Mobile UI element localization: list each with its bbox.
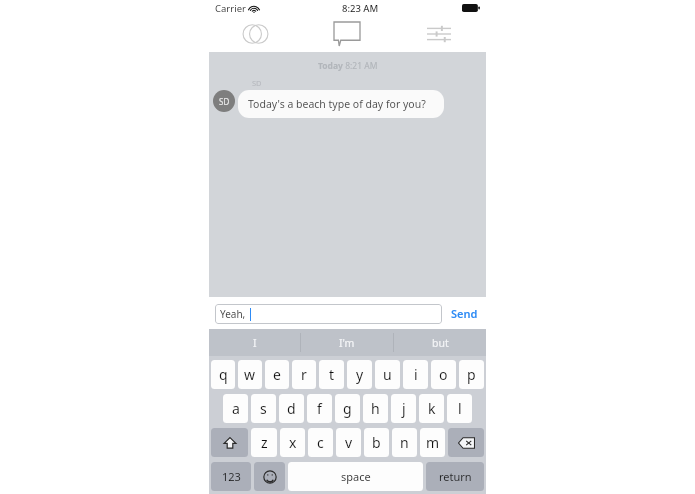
staticText: w xyxy=(244,365,256,384)
staticText: f xyxy=(317,399,322,418)
button[interactable]: Contacts xyxy=(209,16,301,52)
staticText: Today 8:21 AM xyxy=(318,60,378,72)
button[interactable]: w xyxy=(238,360,262,389)
button[interactable]: u xyxy=(375,360,400,389)
button[interactable]: b xyxy=(364,428,389,457)
staticText: o xyxy=(439,365,448,384)
staticText: c xyxy=(317,433,324,452)
staticText: Carrier xyxy=(215,2,246,15)
staticText: Today's a beach type of day for you? xyxy=(248,97,426,111)
button[interactable]: Today's a beach type of day for you? xyxy=(238,90,444,118)
button[interactable]: n xyxy=(392,428,417,457)
staticText: Send xyxy=(451,306,478,321)
button[interactable]: I'm xyxy=(301,329,393,356)
staticText: 8:23 AM xyxy=(342,2,379,15)
staticText: x xyxy=(289,433,297,452)
staticText: m xyxy=(426,433,440,452)
staticText: I'm xyxy=(339,336,355,350)
button[interactable]: r xyxy=(292,360,316,389)
staticText: d xyxy=(287,399,296,418)
staticText: q xyxy=(219,365,228,384)
staticText: k xyxy=(428,399,436,418)
button[interactable]: Backspace xyxy=(448,428,484,457)
button[interactable]: a xyxy=(223,394,248,423)
button[interactable]: I xyxy=(209,329,300,356)
staticText: e xyxy=(273,365,281,384)
staticText: b xyxy=(372,433,381,452)
staticText: z xyxy=(261,433,268,452)
button[interactable]: o xyxy=(431,360,456,389)
button[interactable]: Messages xyxy=(301,16,393,52)
button[interactable]: space xyxy=(288,462,423,491)
staticText: l xyxy=(458,399,462,418)
staticText: return xyxy=(439,469,472,484)
staticText: j xyxy=(402,399,406,418)
staticText: p xyxy=(467,365,476,384)
button[interactable]: m xyxy=(420,428,445,457)
button[interactable]: Send xyxy=(449,302,480,325)
staticText: but xyxy=(432,336,449,350)
button[interactable]: g xyxy=(335,394,360,423)
staticText: space xyxy=(341,469,371,484)
staticText: v xyxy=(345,433,353,452)
staticText: I xyxy=(253,336,257,350)
staticText: a xyxy=(232,399,240,418)
button[interactable]: c xyxy=(308,428,333,457)
button[interactable]: s xyxy=(251,394,276,423)
button[interactable]: 123 xyxy=(211,462,251,491)
button[interactable]: p xyxy=(459,360,484,389)
button[interactable]: z xyxy=(251,428,277,457)
staticText: t xyxy=(329,365,335,384)
button[interactable]: Yeah, xyxy=(215,304,442,324)
button[interactable]: but xyxy=(394,329,486,356)
staticText: SD xyxy=(219,96,230,107)
button[interactable]: Sender avatar SD xyxy=(213,90,235,112)
button[interactable]: v xyxy=(336,428,361,457)
button[interactable]: t xyxy=(319,360,344,389)
staticText: SD xyxy=(252,78,262,88)
staticText: g xyxy=(343,399,352,418)
button[interactable]: f xyxy=(307,394,332,423)
staticText: i xyxy=(414,365,418,384)
staticText: u xyxy=(383,365,392,384)
button[interactable]: Settings xyxy=(393,16,485,52)
button[interactable]: i xyxy=(403,360,428,389)
button[interactable]: j xyxy=(391,394,416,423)
staticText: y xyxy=(356,365,364,384)
button[interactable]: Emoji xyxy=(254,462,285,491)
staticText: 123 xyxy=(222,469,241,484)
button[interactable]: h xyxy=(363,394,388,423)
staticText: r xyxy=(301,365,307,384)
button[interactable]: q xyxy=(211,360,235,389)
button[interactable]: d xyxy=(279,394,304,423)
staticText: s xyxy=(260,399,267,418)
button[interactable]: x xyxy=(280,428,305,457)
button[interactable]: l xyxy=(447,394,472,423)
staticText: n xyxy=(400,433,409,452)
button[interactable]: return xyxy=(426,462,484,491)
button[interactable]: y xyxy=(347,360,372,389)
button[interactable]: k xyxy=(419,394,444,423)
staticText: Yeah, xyxy=(220,307,246,321)
staticText: h xyxy=(371,399,380,418)
button[interactable]: e xyxy=(265,360,289,389)
button[interactable]: Shift xyxy=(211,428,248,457)
